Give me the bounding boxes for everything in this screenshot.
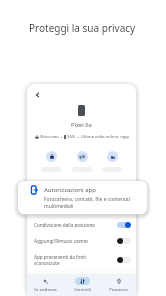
staticText: Aggiungi/Rimuovi utente	[34, 238, 117, 244]
button[interactable]: Autorizzazioni app	[18, 181, 147, 214]
staticText: Fotocamera, contatti, file e contenuti m…	[44, 196, 131, 209]
button[interactable]: Blocca dispositivo	[41, 151, 61, 172]
button[interactable]: Aggiungi/Rimuovi utente	[27, 233, 136, 249]
button[interactable]: Controlli	[64, 274, 100, 296]
staticText: In evidenza	[34, 287, 57, 293]
staticText: 56%	[67, 134, 76, 140]
button[interactable]: Indietro	[33, 90, 43, 100]
button[interactable]: App provenienti da fonti sconosciute	[27, 249, 136, 270]
staticText: Posizione	[109, 287, 128, 293]
button[interactable]: Posizione	[100, 274, 136, 296]
staticText: Autorizzazioni app	[44, 186, 96, 194]
staticText: Controlli	[74, 287, 91, 293]
button[interactable]: Condivisione della posizione	[27, 216, 136, 233]
staticText: Proteggi la sua privacy	[29, 21, 136, 35]
staticText: Pixel 6a	[71, 121, 92, 129]
button[interactable]: In evidenza	[27, 274, 64, 296]
staticText: App provenienti da fonti sconosciute	[34, 254, 117, 266]
staticText: Condivisione della posizione	[34, 222, 117, 228]
button[interactable]: Cancella dati	[102, 151, 122, 172]
staticText: Ultima volta online: oggi	[81, 134, 129, 140]
button[interactable]: Riproduci suono	[72, 151, 92, 172]
staticText: Sbloccato	[40, 134, 59, 140]
